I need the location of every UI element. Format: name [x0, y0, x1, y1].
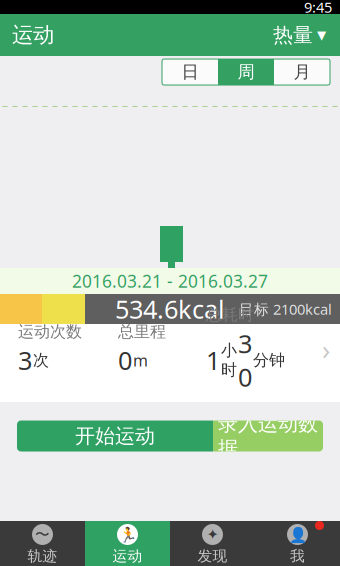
staticText: m	[133, 350, 148, 371]
staticText: 总里程	[118, 322, 166, 341]
staticText: 30	[238, 327, 252, 394]
staticText: 运动次数	[18, 322, 82, 341]
staticText: 开始运动	[75, 424, 155, 448]
button[interactable]: 周	[218, 59, 274, 85]
staticText: ▼	[317, 28, 326, 42]
button[interactable]: 轨迹	[0, 521, 85, 566]
button[interactable]: 运动	[85, 521, 170, 566]
staticText: 次	[33, 350, 49, 370]
button[interactable]: 开始运动	[17, 420, 213, 451]
staticText: 〜	[35, 525, 50, 543]
staticText: 3	[18, 343, 32, 377]
staticText: 录入运动数据	[218, 411, 318, 460]
button[interactable]: 运动次数	[0, 324, 340, 402]
staticText: 1	[206, 343, 220, 377]
staticText: 分钟	[253, 350, 285, 370]
staticText: 总耗时	[206, 305, 254, 325]
staticText: 我	[290, 547, 305, 565]
staticText: 发现	[197, 547, 227, 565]
staticText: 🏃	[118, 526, 136, 543]
staticText: 9:45	[304, 0, 332, 17]
button[interactable]: 热量	[263, 15, 336, 55]
staticText: 周	[237, 61, 254, 83]
staticText: 👤	[288, 526, 306, 543]
staticText: 热量	[273, 23, 313, 47]
staticText: 534.6kcal	[115, 292, 225, 326]
staticText: 2016.03.21 - 2016.03.27	[72, 269, 268, 292]
button[interactable]: 月	[274, 59, 330, 85]
staticText: ›	[322, 332, 330, 367]
staticText: 月	[293, 61, 310, 83]
button[interactable]: 日	[162, 59, 218, 85]
button[interactable]: 发现	[170, 521, 255, 566]
staticText: 运动	[112, 547, 142, 565]
staticText: 相当于5.3碗米饭的热量	[98, 400, 264, 421]
staticText: ✦	[206, 526, 218, 543]
staticText: 目标 2100kcal	[239, 299, 332, 319]
staticText: 小时	[221, 340, 237, 380]
button[interactable]: 录入运动数据	[213, 420, 323, 451]
staticText: 0	[118, 343, 132, 377]
button[interactable]: 我	[255, 521, 340, 566]
staticText: 日	[181, 61, 198, 83]
staticText: 运动	[12, 22, 54, 48]
staticText: 轨迹	[27, 547, 57, 565]
